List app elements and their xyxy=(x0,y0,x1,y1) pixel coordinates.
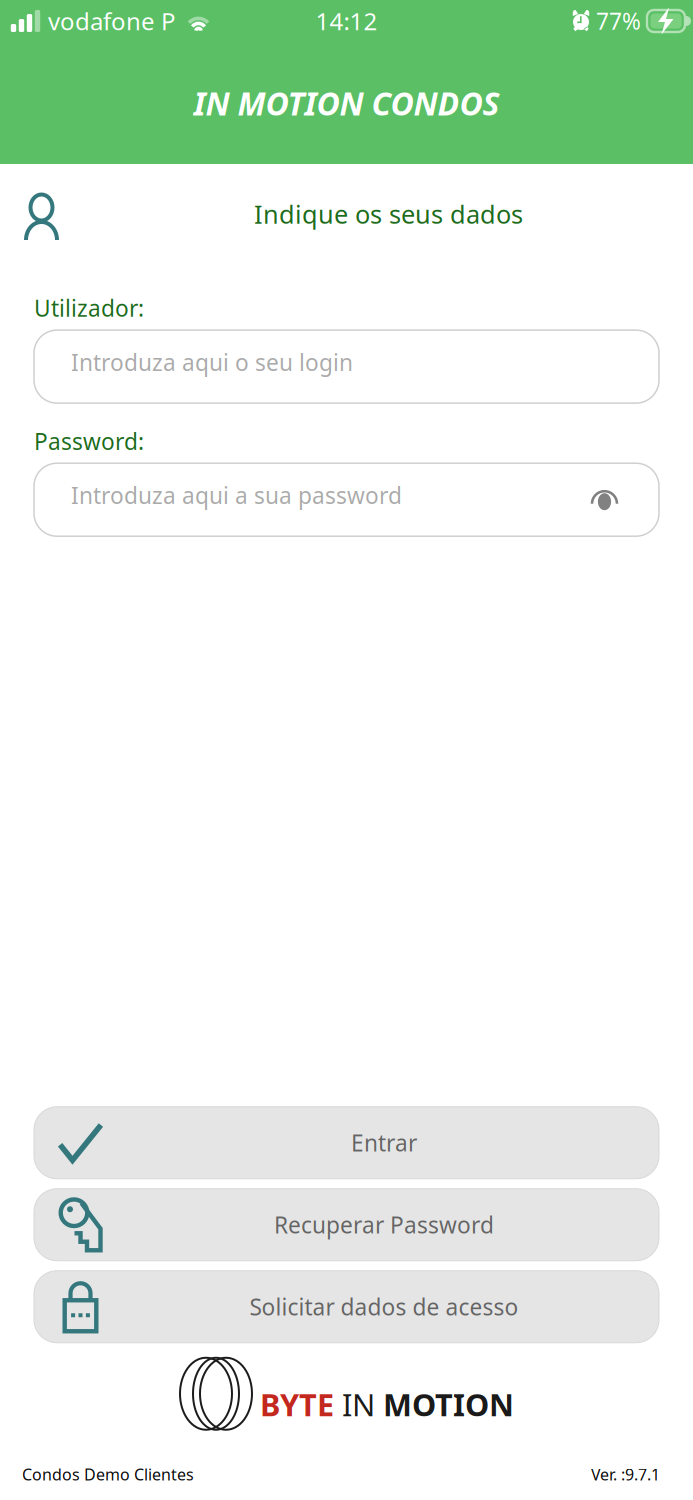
button[interactable]: Solicitar dados de acesso xyxy=(34,1271,659,1343)
staticText: IN MOTION CONDOS xyxy=(193,82,499,124)
staticText: Solicitar dados de acesso xyxy=(249,1292,518,1322)
staticText: vodafone P xyxy=(48,5,176,37)
staticText: Condos Demo Clientes xyxy=(22,1464,194,1485)
staticText: MOTION xyxy=(383,1384,514,1425)
staticText: 77% xyxy=(596,6,641,36)
staticText: Introduza aqui o seu login xyxy=(71,347,353,377)
staticText: Password: xyxy=(34,426,144,456)
button[interactable]: Show password xyxy=(586,489,623,511)
button[interactable]: Entrar xyxy=(34,1107,659,1179)
button[interactable]: Recuperar Password xyxy=(34,1189,659,1261)
staticText: IN xyxy=(334,1384,383,1425)
staticText: BYTE xyxy=(260,1384,334,1425)
staticText: Indique os seus dados xyxy=(254,197,523,231)
staticText: 14:12 xyxy=(315,5,377,37)
staticText: Utilizador: xyxy=(34,293,144,323)
staticText: Recuperar Password xyxy=(274,1210,494,1240)
staticText: Entrar xyxy=(351,1128,417,1158)
staticText: Ver. :9.7.1 xyxy=(591,1464,660,1485)
staticText: Introduza aqui a sua password xyxy=(71,480,402,510)
